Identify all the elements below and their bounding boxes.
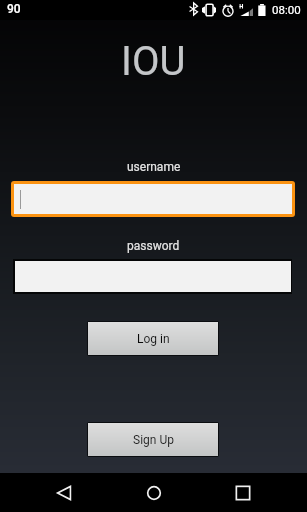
staticText: 90 <box>7 2 21 16</box>
staticText: Sign Up <box>133 433 174 447</box>
button[interactable]: Home <box>124 473 184 512</box>
button[interactable] <box>14 184 292 214</box>
staticText: 08:00 <box>272 3 301 16</box>
button[interactable]: Recent apps <box>213 473 273 512</box>
staticText: password <box>127 239 180 253</box>
button[interactable]: Log in <box>88 322 218 355</box>
staticText: IOU <box>121 38 186 85</box>
button[interactable]: Sign Up <box>88 423 218 456</box>
staticText: username <box>127 160 181 174</box>
staticText: Log in <box>137 332 170 346</box>
button[interactable]: Back <box>34 473 94 512</box>
